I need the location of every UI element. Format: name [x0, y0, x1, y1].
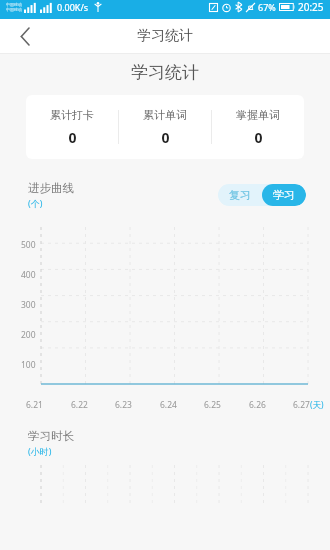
- button[interactable]: Back: [10, 21, 40, 51]
- button[interactable]: 复习: [218, 184, 262, 206]
- staticText: (天): [310, 399, 324, 411]
- staticText: 学习时长: [28, 429, 74, 443]
- staticText: (个): [28, 197, 43, 209]
- staticText: 6.27: [293, 399, 310, 411]
- staticText: 0: [254, 128, 263, 147]
- staticText: 500: [21, 239, 36, 251]
- staticText: 掌握单词: [236, 108, 280, 122]
- staticText: 20:25: [298, 0, 324, 14]
- staticText: 累计单词: [143, 108, 187, 122]
- staticText: 6.24: [160, 399, 177, 411]
- staticText: 进步曲线: [28, 181, 74, 195]
- staticText: 复习: [229, 188, 251, 202]
- staticText: 0.00K/s: [57, 1, 89, 13]
- staticText: 中国移动: [6, 2, 22, 7]
- button[interactable]: 累计打卡: [26, 95, 304, 159]
- staticText: 中国移动: [6, 7, 22, 12]
- button[interactable]: 学习: [262, 184, 306, 206]
- staticText: 学习: [273, 188, 295, 202]
- staticText: 6.26: [249, 399, 266, 411]
- staticText: 0: [161, 128, 170, 147]
- staticText: (小时): [28, 445, 52, 457]
- staticText: 学习统计: [137, 27, 193, 45]
- staticText: 67%: [258, 1, 276, 13]
- staticText: 400: [21, 269, 36, 281]
- staticText: 200: [21, 329, 36, 341]
- staticText: 0: [68, 128, 77, 147]
- staticText: 300: [21, 299, 36, 311]
- staticText: 累计打卡: [50, 108, 94, 122]
- staticText: 学习统计: [131, 62, 199, 83]
- staticText: 6.25: [204, 399, 221, 411]
- staticText: 100: [21, 359, 36, 371]
- staticText: 6.21: [26, 399, 43, 411]
- staticText: 6.23: [115, 399, 132, 411]
- staticText: 6.22: [71, 399, 88, 411]
